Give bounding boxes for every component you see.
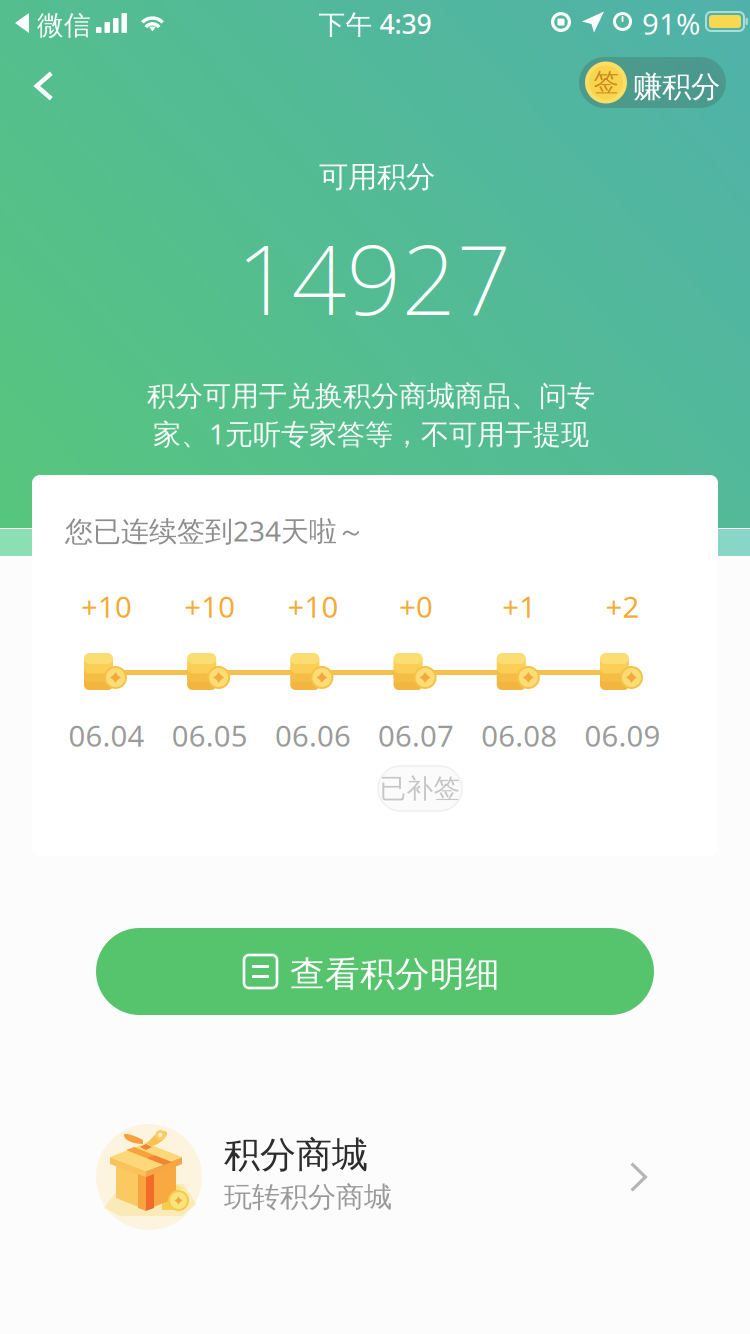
button[interactable]: 积分商城 (0, 1124, 750, 1230)
staticText: 已补签 (379, 772, 460, 805)
staticText: 玩转积分商城 (224, 1180, 392, 1214)
staticText: +10 (184, 587, 235, 626)
staticText: 下午 4:39 (318, 6, 431, 41)
staticText: 91% (642, 4, 700, 43)
staticText: 06.07 (378, 716, 454, 755)
button[interactable]: Back (7, 53, 81, 119)
staticText: 可用积分 (319, 159, 435, 195)
staticText: 06.06 (275, 716, 351, 755)
staticText: 赚积分 (633, 69, 720, 105)
staticText: +0 (399, 587, 433, 626)
staticText: 查看积分明细 (290, 953, 500, 996)
staticText: 微信 (37, 9, 91, 42)
staticText: +2 (605, 587, 639, 626)
button[interactable]: 签 (579, 57, 726, 108)
staticText: +1 (502, 587, 536, 626)
staticText: 06.08 (481, 716, 557, 755)
staticText: 06.04 (68, 716, 144, 755)
staticText: 积分商城 (224, 1133, 368, 1177)
staticText: 06.09 (584, 716, 660, 755)
staticText: 积分可用于兑换积分商城商品、问专 (147, 379, 595, 413)
staticText: +10 (81, 587, 132, 626)
staticText: 您已连续签到234天啦～ (65, 512, 365, 549)
staticText: 签 (593, 67, 618, 98)
staticText: 14927 (236, 214, 511, 341)
button[interactable]: 查看积分明细 (96, 928, 654, 1015)
staticText: +10 (287, 587, 338, 626)
staticText: 家、1元听专家答等，不可用于提现 (153, 415, 589, 452)
staticText: 06.05 (172, 716, 248, 755)
